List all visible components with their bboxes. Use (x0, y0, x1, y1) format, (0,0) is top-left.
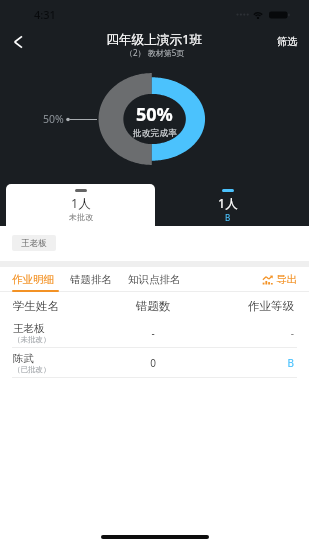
staticText: （未批改） (13, 335, 51, 344)
staticText: 未批改 (69, 212, 93, 222)
staticText: 学生姓名 (13, 299, 106, 313)
staticText: - (200, 326, 294, 340)
staticText: 作业等级 (200, 299, 294, 313)
button[interactable]: 作业明细 (0, 273, 62, 286)
button[interactable]: Back (4, 28, 31, 55)
button[interactable]: 陈武 (0, 348, 309, 378)
staticText: 陈武 (13, 352, 34, 365)
staticText: 筛选 (277, 35, 298, 48)
staticText: B (225, 212, 231, 223)
button[interactable]: 王老板 (12, 235, 56, 251)
staticText: 王老板 (13, 322, 45, 335)
staticText: B (200, 356, 294, 370)
button[interactable]: 导出 (252, 269, 309, 290)
button[interactable]: 错题排名 (62, 273, 120, 286)
staticText: 王老板 (21, 238, 47, 249)
staticText: 批改完成率 (133, 128, 177, 139)
staticText: 导出 (276, 273, 297, 286)
staticText: 知识点排名 (128, 273, 181, 286)
staticText: 错题排名 (70, 273, 112, 286)
staticText: 4:31 (34, 7, 56, 22)
button[interactable]: 筛选 (267, 29, 309, 54)
staticText: 1人 (218, 195, 238, 212)
staticText: - (106, 326, 200, 340)
staticText: 四年级上演示1班 (106, 30, 203, 47)
staticText: 0 (106, 356, 200, 370)
staticText: （已批改） (13, 365, 51, 374)
button[interactable]: 知识点排名 (120, 273, 189, 286)
staticText: 错题数 (106, 299, 200, 313)
button[interactable]: 王老板 (0, 318, 309, 348)
staticText: 50% (43, 112, 64, 126)
button[interactable]: 1人 (155, 184, 301, 226)
staticText: （2） 教材第5页 (125, 47, 185, 58)
staticText: 1人 (71, 195, 91, 212)
staticText: 50% (136, 102, 173, 127)
staticText: 作业明细 (12, 273, 54, 286)
button[interactable]: 1人 (6, 184, 155, 226)
